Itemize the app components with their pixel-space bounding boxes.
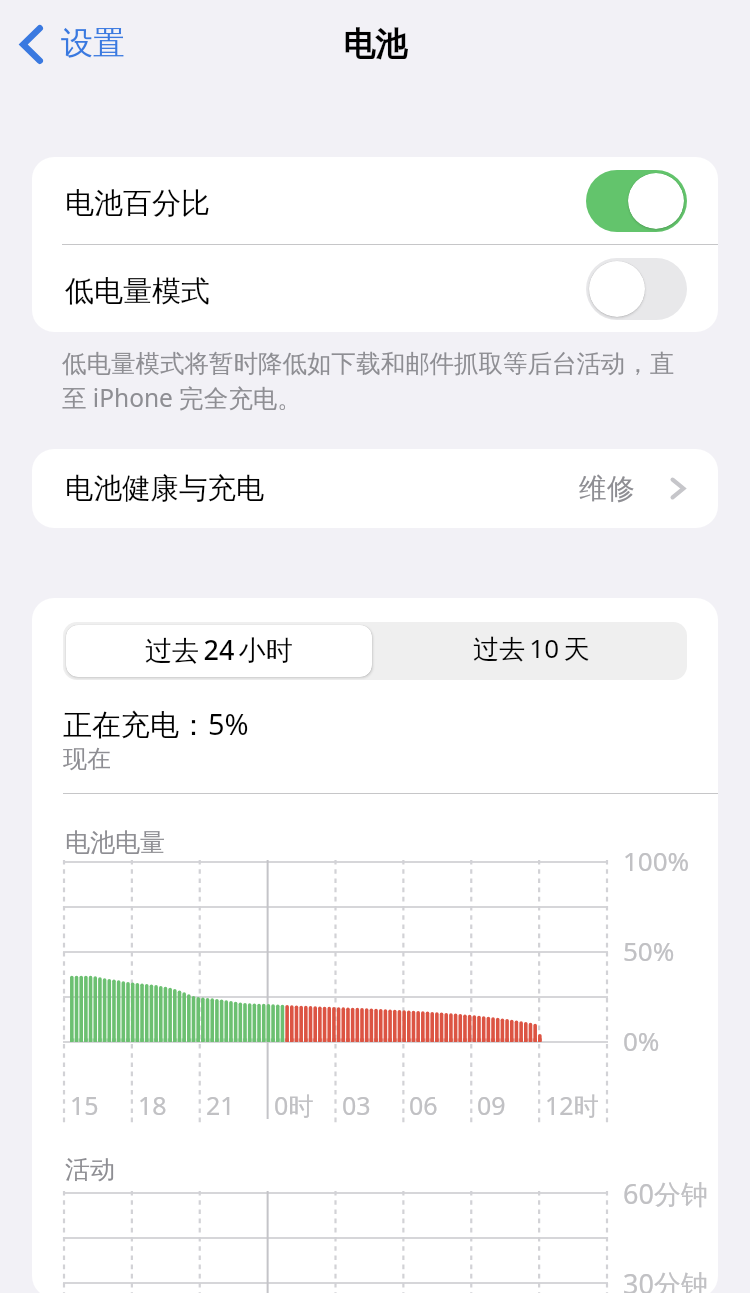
button[interactable]: 低电量模式 xyxy=(32,245,718,332)
staticText: 过去 24 小时 xyxy=(145,631,293,668)
staticText: 低电量模式 xyxy=(65,273,210,310)
button[interactable]: 开 xyxy=(586,170,687,232)
staticText: 06 xyxy=(409,1088,438,1122)
staticText: 电池百分比 xyxy=(65,185,210,222)
staticText: 15 xyxy=(70,1088,99,1122)
staticText: 现在 xyxy=(63,744,111,774)
staticText: 低电量模式将暂时降低如下载和邮件抓取等后台活动，直至 iPhone 完全充电。 xyxy=(62,348,687,414)
staticText: 正在充电：5% xyxy=(63,704,249,744)
staticText: 60分钟 xyxy=(623,1175,708,1212)
staticText: 100% xyxy=(623,843,690,878)
staticText: 电池电量 xyxy=(65,827,165,858)
button[interactable]: 返回设置 xyxy=(10,16,139,72)
staticText: 过去 10 天 xyxy=(473,630,590,666)
button[interactable]: 电池健康与充电 xyxy=(32,449,718,528)
button[interactable]: 过去 24 小时 xyxy=(66,625,372,677)
staticText: 电池健康与充电 xyxy=(65,471,265,507)
button[interactable]: 关 xyxy=(586,258,687,320)
staticText: 30分钟 xyxy=(623,1265,708,1293)
staticText: 0% xyxy=(623,1023,660,1058)
staticText: 维修 xyxy=(579,471,635,506)
staticText: 21 xyxy=(206,1088,235,1122)
staticText: 设置 xyxy=(61,23,125,63)
staticText: 03 xyxy=(342,1088,371,1122)
staticText: 50% xyxy=(623,933,675,968)
staticText: 18 xyxy=(138,1088,167,1122)
button[interactable]: 过去 10 天 xyxy=(375,622,687,680)
staticText: 09 xyxy=(477,1088,506,1122)
staticText: 活动 xyxy=(65,1154,115,1185)
staticText: 电池 xyxy=(343,24,407,64)
button[interactable]: 电池百分比 xyxy=(32,157,718,244)
staticText: 12时 xyxy=(545,1088,599,1122)
staticText: 0时 xyxy=(274,1088,314,1122)
